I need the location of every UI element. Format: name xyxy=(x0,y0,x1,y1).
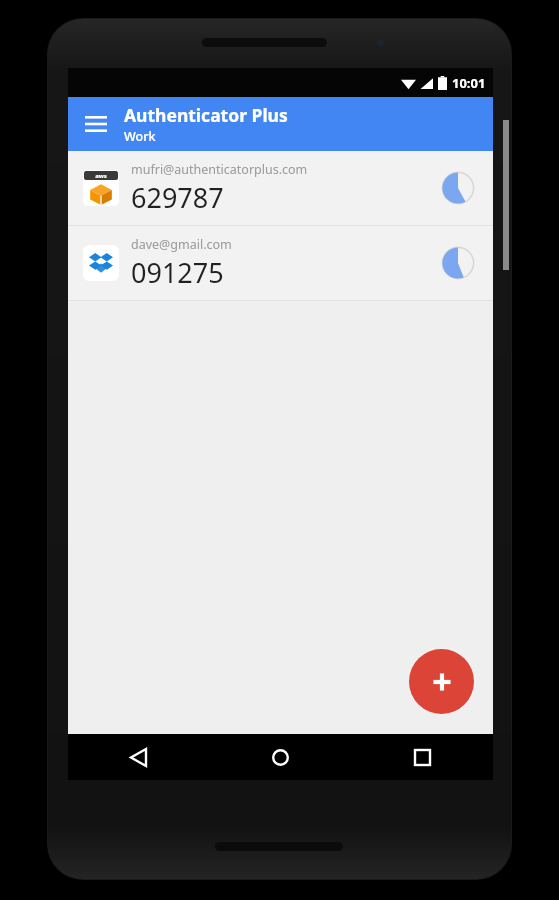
staticText: 10:01 xyxy=(452,74,486,92)
staticText: Work xyxy=(124,128,156,145)
staticText: 091275 xyxy=(131,254,224,291)
button[interactable]: Recent apps xyxy=(351,734,493,780)
button[interactable]: dave@gmail.com xyxy=(68,226,493,300)
staticText: mufri@authenticatorplus.com xyxy=(131,161,308,178)
button[interactable]: Add account xyxy=(409,649,474,714)
button[interactable]: Back xyxy=(68,734,209,780)
button[interactable]: aws xyxy=(68,151,493,225)
staticText: 629787 xyxy=(131,179,224,216)
button[interactable]: Open navigation drawer xyxy=(79,107,113,141)
staticText: Authenticator Plus xyxy=(124,103,288,127)
staticText: aws xyxy=(95,172,107,180)
button[interactable]: Home xyxy=(209,734,351,780)
staticText: dave@gmail.com xyxy=(131,236,232,253)
